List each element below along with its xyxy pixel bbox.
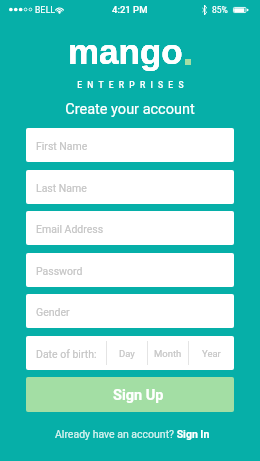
staticText: Month	[154, 348, 182, 359]
staticText: Year	[202, 348, 221, 359]
button[interactable]: Month	[148, 336, 188, 370]
staticText: Last Name	[36, 182, 87, 194]
other: Bluetooth	[202, 5, 207, 15]
staticText: mango	[68, 32, 183, 71]
button[interactable]: Sign Up	[26, 377, 234, 412]
button[interactable]: First Name	[26, 128, 234, 162]
staticText: Email Address	[36, 223, 104, 235]
staticText: 4:21 PM	[112, 4, 148, 15]
staticText: 85%	[212, 5, 228, 15]
staticText: Sign Up	[113, 387, 164, 404]
button[interactable]: Last Name	[26, 170, 234, 204]
other: Battery 85 percent	[233, 7, 249, 13]
button[interactable]: Year	[189, 336, 234, 370]
button[interactable]: Gender	[26, 294, 234, 328]
button[interactable]: Password	[26, 253, 234, 287]
staticText: First Name	[36, 140, 88, 152]
button[interactable]: Email Address	[26, 211, 234, 245]
other: Cellular signal	[9, 7, 33, 12]
staticText: Already have an account? Sign In	[55, 428, 210, 440]
staticText: Create your account	[0, 101, 260, 118]
staticText: Date of birth:	[36, 348, 97, 360]
staticText: Gender	[36, 306, 70, 318]
staticText: Password	[36, 265, 83, 277]
staticText: Day	[119, 348, 135, 359]
other: Wi-Fi	[55, 5, 64, 14]
button[interactable]: Already have an account? Sign In	[49, 425, 216, 443]
staticText: mango	[68, 32, 183, 71]
staticText: BELL	[35, 5, 56, 15]
button[interactable]: Day	[107, 336, 147, 370]
staticText: ENTERPRISES	[3, 80, 260, 90]
